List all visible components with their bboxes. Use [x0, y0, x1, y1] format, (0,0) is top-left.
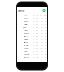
- staticText: 4.4: [40, 42, 42, 43]
- staticText: 63: [32, 39, 34, 40]
- staticText: 24.5: [35, 27, 38, 28]
- staticText: 4.5: [44, 33, 46, 34]
- staticText: 60: [32, 24, 34, 25]
- button[interactable]: Irving: [16, 50, 47, 53]
- staticText: 4.0: [44, 57, 46, 58]
- staticText: 8.6: [44, 21, 46, 22]
- staticText: 12.3: [43, 54, 46, 55]
- staticText: Embiid: [23, 24, 27, 25]
- staticText: 4.6: [40, 30, 42, 31]
- button[interactable]: Curry: [16, 17, 47, 20]
- staticText: 5.1: [44, 51, 46, 52]
- staticText: Lillard: [23, 36, 27, 37]
- button[interactable]: Murray: [16, 56, 47, 59]
- staticText: 79: [32, 54, 34, 55]
- staticText: 64: [32, 18, 34, 19]
- staticText: 31.1: [35, 39, 38, 40]
- staticText: 73: [32, 48, 34, 49]
- staticText: 7.3: [40, 36, 42, 37]
- staticText: 3.0: [44, 48, 46, 49]
- staticText: 66: [32, 21, 34, 22]
- staticText: 69: [32, 27, 34, 28]
- staticText: 6.3: [40, 18, 42, 19]
- button[interactable]: Booker: [16, 32, 47, 35]
- staticText: 58: [32, 36, 34, 37]
- button[interactable]: Jokic: [16, 26, 47, 29]
- staticText: 4.2: [40, 24, 42, 25]
- staticText: 5.1: [44, 18, 46, 19]
- staticText: Mitchell: [23, 42, 27, 43]
- button[interactable]: Doncic: [16, 20, 47, 23]
- staticText: 27.8: [35, 33, 38, 34]
- staticText: 4.3: [44, 42, 46, 43]
- staticText: 11.8: [43, 39, 46, 40]
- button[interactable]: Add: [42, 8, 46, 12]
- staticText: 8.0: [40, 21, 42, 22]
- staticText: 53: [32, 33, 34, 34]
- button[interactable]: Embiid: [16, 23, 47, 26]
- staticText: 8.8: [44, 30, 46, 31]
- staticText: 6.9: [44, 45, 46, 46]
- staticText: Tatum: [23, 30, 27, 31]
- staticText: 74: [32, 30, 34, 31]
- staticText: Booker: [23, 33, 29, 34]
- staticText: 10.2: [43, 24, 46, 25]
- staticText: 5.5: [40, 51, 42, 52]
- staticText: NAME: [23, 15, 27, 16]
- staticText: Jokic: [23, 27, 26, 28]
- staticText: 19.1: [35, 54, 38, 55]
- button[interactable]: Sabonis: [16, 53, 47, 56]
- staticText: 67: [32, 45, 34, 46]
- button[interactable]: Brown: [16, 44, 47, 47]
- staticText: 9.8: [40, 27, 42, 28]
- staticText: 10.2: [39, 48, 42, 49]
- staticText: 3.5: [40, 45, 42, 46]
- staticText: Curry: [23, 18, 28, 19]
- staticText: GP: [32, 15, 34, 16]
- staticText: Sabonis: [23, 54, 29, 55]
- staticText: 4.8: [44, 36, 46, 37]
- staticText: Irving: [23, 51, 27, 52]
- staticText: 5.5: [40, 33, 42, 34]
- button[interactable]: Young: [16, 47, 47, 50]
- staticText: 5.7: [40, 39, 42, 40]
- staticText: Doncic: [23, 21, 28, 22]
- button[interactable]: Mitchell: [16, 41, 47, 44]
- staticText: Antetok: [23, 39, 28, 40]
- staticText: 60: [32, 51, 34, 52]
- button[interactable]: Lillard: [16, 35, 47, 38]
- button[interactable]: Tatum: [16, 29, 47, 32]
- staticText: 6.2: [40, 57, 42, 58]
- staticText: Brown: [23, 45, 28, 46]
- staticText: Stats: [18, 9, 24, 12]
- staticText: 65: [32, 57, 34, 58]
- staticText: Murray: [23, 57, 29, 58]
- staticText: 11.8: [43, 27, 46, 28]
- staticText: Young: [23, 48, 28, 49]
- staticText: 7.3: [40, 54, 42, 55]
- button[interactable]: Antetok: [16, 38, 47, 41]
- staticText: 68: [32, 42, 34, 43]
